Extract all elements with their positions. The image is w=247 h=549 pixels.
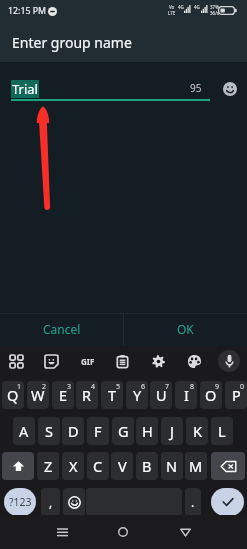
staticText: W [31,385,45,405]
button[interactable]: Clipboard [111,350,133,372]
staticText: I [184,385,189,405]
staticText: U [156,385,167,405]
button[interactable]: Recents [50,515,74,549]
staticText: R [82,385,92,405]
staticText: 4G [178,4,184,10]
staticText: P [232,385,241,405]
staticText: Z [44,456,53,476]
staticText: Trial [12,80,38,98]
staticText: Cancel [43,321,81,337]
staticText: 9 [215,382,220,392]
staticText: Y [133,385,142,405]
staticText: 2 [42,382,47,392]
staticText: 0 [240,382,245,392]
button[interactable]: Home [111,515,135,549]
button[interactable]: V [111,452,133,480]
button[interactable]: Enter [211,488,244,516]
staticText: 6 [141,382,146,392]
staticText: 95 [190,81,202,95]
staticText: , [49,494,53,510]
staticText: L [218,421,226,441]
button[interactable]: ?123 [4,488,36,516]
staticText: C [93,456,103,476]
staticText: D [68,421,79,441]
staticText: O [205,385,217,405]
staticText: E [59,385,68,405]
staticText: Vo [169,4,175,10]
button[interactable]: Voice input [218,350,240,372]
button[interactable]: G [112,417,134,445]
button[interactable]: X [62,452,84,480]
button[interactable]: F [87,417,109,445]
button[interactable]: K [186,417,208,445]
button[interactable]: W [27,381,49,409]
button[interactable]: R [76,381,98,409]
button[interactable]: Stickers [40,350,62,372]
staticText: 4 [91,382,96,392]
button[interactable]: , [41,488,60,516]
staticText: B [142,456,152,476]
button[interactable]: T [101,381,123,409]
button[interactable]: OK [123,313,247,345]
button[interactable]: Space [86,488,182,516]
button[interactable]: Emoji [63,488,85,516]
staticText: A [19,421,29,441]
button[interactable]: GIF [76,350,98,372]
staticText: GIF [81,356,95,367]
button[interactable]: Z [37,452,59,480]
button[interactable]: Backspace [211,452,245,480]
button[interactable]: H [136,417,158,445]
button[interactable]: I [175,381,197,409]
staticText: K [193,421,202,441]
staticText: T [108,385,117,405]
staticText: 1 [17,382,22,392]
button[interactable]: J [161,417,183,445]
button[interactable]: P [225,381,247,409]
staticText: S [45,421,53,441]
button[interactable]: Q [2,381,24,409]
button[interactable]: M [185,452,207,480]
button[interactable]: N [161,452,183,480]
staticText: H [142,421,153,441]
staticText: J [170,421,174,441]
button[interactable]: Apps [5,350,27,372]
button[interactable]: S [38,417,60,445]
button[interactable]: D [62,417,84,445]
button[interactable]: Settings [147,350,169,372]
staticText: V [118,456,127,476]
staticText: 4G [194,4,200,10]
staticText: OK [177,321,194,337]
button[interactable]: L [211,417,233,445]
button[interactable]: B [136,452,158,480]
staticText: 7 [165,382,170,392]
button[interactable]: . [185,488,201,516]
staticText: 36/s [210,10,219,16]
staticText: 12:15 PM [8,5,47,17]
staticText: Q [7,385,19,405]
staticText: ?123 [9,495,32,509]
button[interactable]: C [87,452,109,480]
button[interactable]: Themes [183,350,205,372]
button[interactable]: Y [126,381,148,409]
staticText: Enter group name [12,33,132,52]
staticText: N [166,456,178,476]
button[interactable]: A [13,417,35,445]
button[interactable]: O [200,381,222,409]
staticText: X [69,456,78,476]
staticText: 8 [190,382,195,392]
staticText: M [189,456,203,476]
staticText: 3 [67,382,72,392]
staticText: F [94,421,102,441]
button[interactable]: Emoji [219,78,240,99]
staticText: . [191,494,195,510]
staticText: G [118,421,129,441]
button[interactable]: Shift [2,452,34,480]
button[interactable]: U [150,381,172,409]
button[interactable]: E [52,381,74,409]
button[interactable]: Back [173,515,197,549]
staticText: 37% [210,4,219,10]
staticText: 5 [116,382,121,392]
button[interactable]: Cancel [0,313,123,345]
staticText: LTE [168,10,176,16]
